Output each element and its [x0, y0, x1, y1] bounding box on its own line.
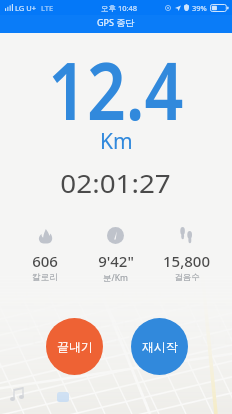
- staticText: 재시작: [142, 339, 178, 354]
- staticText: LTE: [41, 3, 54, 13]
- staticText: LG U+: [15, 3, 36, 13]
- staticText: 걸음수: [174, 272, 200, 283]
- staticText: 칼로리: [32, 272, 58, 283]
- staticText: 분/Km: [103, 272, 128, 284]
- staticText: 15,800: [163, 251, 210, 271]
- button[interactable]: 끝내기: [46, 318, 103, 375]
- staticText: Km: [100, 127, 133, 156]
- staticText: 9'42": [98, 251, 134, 271]
- staticText: 606: [32, 251, 58, 271]
- staticText: 끝내기: [57, 339, 93, 354]
- staticText: 오후 10:48: [101, 3, 138, 13]
- staticText: 12.4: [48, 34, 184, 143]
- staticText: 02:01:27: [60, 165, 172, 200]
- button[interactable]: 재시작: [131, 318, 188, 375]
- staticText: GPS 중단: [97, 16, 135, 28]
- staticText: 39%: [192, 3, 207, 13]
